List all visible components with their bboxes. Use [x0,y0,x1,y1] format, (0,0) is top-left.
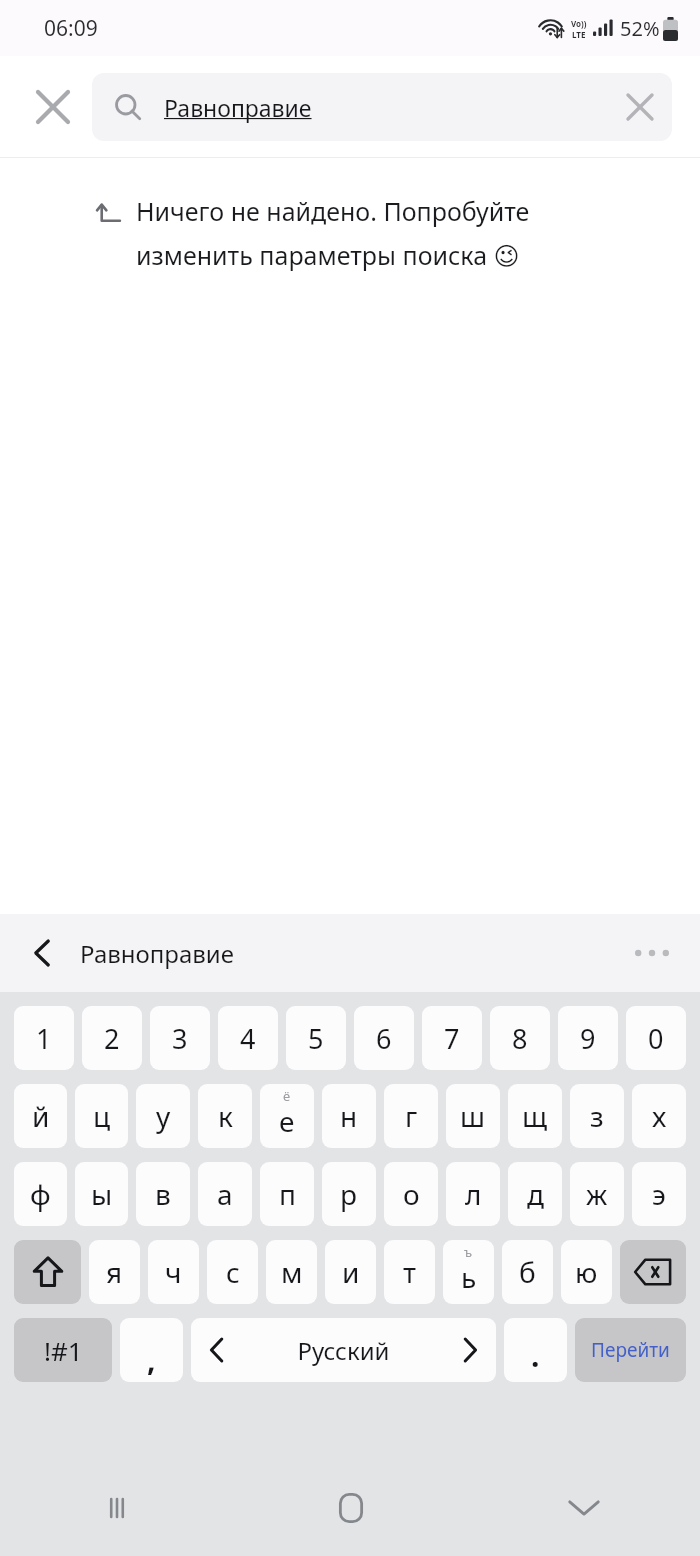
staticText: ё [283,1087,291,1105]
staticText: б [519,1253,536,1291]
staticText: п [279,1175,296,1213]
button[interactable]: Back [16,926,70,980]
button[interactable]: щ [508,1084,562,1148]
button[interactable]: 1 [14,1006,74,1070]
staticText: 52% [620,15,660,42]
button[interactable]: Comma [120,1318,183,1382]
button[interactable]: э [632,1162,686,1226]
staticText: т [403,1253,417,1291]
button[interactable]: и [325,1240,376,1304]
staticText: г [405,1097,418,1135]
button[interactable]: Shift [14,1240,81,1304]
staticText: !#1 [44,1333,83,1368]
staticText: ц [93,1097,111,1135]
button[interactable]: Равноправие [80,937,234,970]
staticText: с [226,1253,240,1291]
button[interactable]: Равноправие [92,73,672,141]
button[interactable]: Русский [191,1318,496,1382]
button[interactable]: 2 [82,1006,142,1070]
staticText: Vo)) [571,18,587,29]
staticText: 0 [648,1020,664,1057]
staticText: , [147,1339,156,1380]
button[interactable]: д [508,1162,562,1226]
button[interactable]: 7 [422,1006,482,1070]
button[interactable]: Hide keyboard [467,1460,700,1556]
button[interactable]: Close [22,76,84,138]
button[interactable]: я [89,1240,140,1304]
button[interactable]: й [14,1084,67,1148]
button[interactable]: 6 [354,1006,414,1070]
button[interactable]: Перейти [575,1318,686,1382]
staticText: 2 [104,1020,120,1057]
staticText: 8 [512,1020,528,1057]
staticText: д [527,1175,544,1213]
button[interactable]: ъ [443,1240,494,1304]
staticText: 4 [240,1020,256,1057]
staticText: л [465,1175,482,1213]
button[interactable]: р [322,1162,376,1226]
button[interactable]: ф [14,1162,67,1226]
button[interactable]: с [207,1240,258,1304]
staticText: 9 [580,1020,596,1057]
button[interactable]: 0 [626,1006,686,1070]
button[interactable]: ц [75,1084,128,1148]
button[interactable]: б [502,1240,553,1304]
staticText: х [652,1097,667,1135]
button[interactable]: ё [260,1084,314,1148]
button[interactable]: 5 [286,1006,346,1070]
button[interactable]: Home [234,1460,467,1556]
staticText: ъ [464,1243,473,1261]
staticText: . [531,1335,540,1376]
staticText: о [403,1175,420,1213]
button[interactable]: ж [570,1162,624,1226]
button[interactable]: ы [75,1162,128,1226]
staticText: к [218,1097,233,1135]
button[interactable]: Backspace [620,1240,686,1304]
staticText: 5 [308,1020,324,1057]
button[interactable]: More options [626,927,678,979]
button[interactable]: ш [446,1084,500,1148]
staticText: н [340,1097,358,1135]
staticText: и [342,1253,360,1291]
button[interactable]: в [136,1162,190,1226]
button[interactable]: п [260,1162,314,1226]
button[interactable]: Period [504,1318,567,1382]
staticText: ф [30,1175,51,1213]
staticText: а [217,1175,233,1213]
button[interactable]: л [446,1162,500,1226]
staticText: Перейти [591,1337,670,1363]
button[interactable]: !#1 [14,1318,112,1382]
staticText: ч [165,1253,182,1291]
button[interactable]: 8 [490,1006,550,1070]
staticText: ш [460,1097,486,1135]
staticText: щ [522,1097,548,1135]
staticText: э [652,1175,666,1213]
staticText: Русский [225,1334,462,1367]
button[interactable]: Recent apps [0,1460,234,1556]
staticText: 6 [376,1020,392,1057]
staticText: ь [461,1258,477,1296]
staticText: е [279,1102,295,1140]
button[interactable]: а [198,1162,252,1226]
button[interactable]: 4 [218,1006,278,1070]
button[interactable]: з [570,1084,624,1148]
button[interactable]: н [322,1084,376,1148]
staticText: р [340,1175,358,1213]
button[interactable]: ч [148,1240,199,1304]
button[interactable]: 3 [150,1006,210,1070]
staticText: Ничего не найдено. Попробуйте изменить п… [136,194,604,272]
button[interactable]: Clear query [612,79,668,135]
button[interactable]: ю [561,1240,612,1304]
button[interactable]: к [198,1084,252,1148]
staticText: 7 [444,1020,460,1057]
button[interactable]: у [136,1084,190,1148]
button[interactable]: м [266,1240,317,1304]
button[interactable]: о [384,1162,438,1226]
staticText: ж [586,1175,608,1213]
button[interactable]: г [384,1084,438,1148]
staticText: 06:09 [44,14,98,43]
button[interactable]: х [632,1084,686,1148]
staticText: Равноправие [164,92,612,123]
button[interactable]: т [384,1240,435,1304]
button[interactable]: 9 [558,1006,618,1070]
